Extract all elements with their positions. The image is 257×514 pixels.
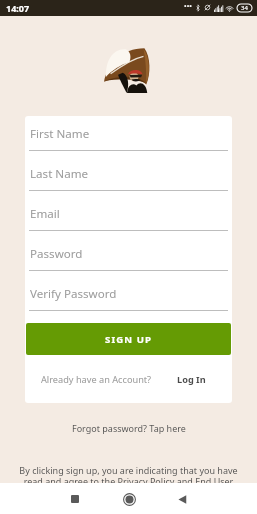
- staticText: 14:07: [6, 2, 30, 14]
- button[interactable]: Verify Password: [29, 276, 228, 310]
- staticText: •••: [184, 2, 192, 12]
- button[interactable]: Home: [116, 486, 142, 512]
- button[interactable]: Log In: [173, 369, 210, 390]
- staticText: SIGN UP: [105, 333, 153, 346]
- button[interactable]: Recent apps: [62, 486, 88, 512]
- staticText: Verify Password: [30, 286, 117, 302]
- button[interactable]: Back: [169, 486, 195, 512]
- button[interactable]: Password: [29, 236, 228, 270]
- staticText: First Name: [30, 126, 90, 142]
- button[interactable]: Email: [29, 196, 228, 230]
- staticText: By clicking sign up, you are indicating …: [13, 464, 244, 500]
- staticText: Forgot password? Tap here: [72, 422, 186, 434]
- staticText: Last Name: [30, 166, 89, 182]
- staticText: Log In: [177, 373, 206, 386]
- button[interactable]: Forgot password? Tap here: [0, 422, 257, 434]
- button[interactable]: Last Name: [29, 156, 228, 190]
- staticText: Password: [30, 246, 83, 262]
- staticText: Email: [30, 206, 60, 222]
- button[interactable]: SIGN UP: [26, 323, 231, 355]
- staticText: Already have an Account?: [41, 373, 152, 386]
- staticText: 34: [241, 4, 248, 12]
- button[interactable]: First Name: [29, 116, 228, 150]
